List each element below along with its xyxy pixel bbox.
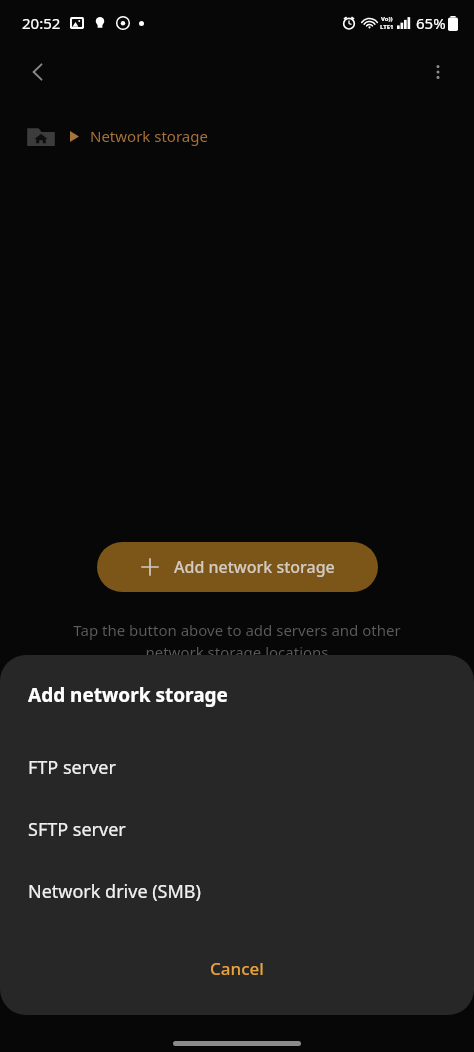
staticText: 65% [416,13,446,33]
button[interactable]: More options [412,46,464,98]
staticText: Network storage [90,126,208,146]
button[interactable]: Network storage [90,126,208,146]
button[interactable]: FTP server [0,736,474,798]
staticText: 20:52 [22,13,61,33]
button[interactable]: Home [26,124,56,148]
button[interactable]: Network drive (SMB) [0,860,474,922]
button[interactable]: Back [10,46,66,98]
button[interactable]: Cancel [0,944,474,992]
button[interactable]: Add network storage [97,542,378,592]
staticText: Network drive (SMB) [28,879,201,904]
staticText: LTE1 [380,23,394,31]
staticText: SFTP server [28,817,126,842]
staticText: Add network storage [28,682,228,708]
staticText: Cancel [210,957,264,980]
button[interactable]: SFTP server [0,798,474,860]
staticText: Add network storage [174,556,335,578]
staticText: FTP server [28,755,116,780]
staticText: Vo)) [381,15,393,23]
staticText: Tap the button above to add servers and … [60,620,414,663]
